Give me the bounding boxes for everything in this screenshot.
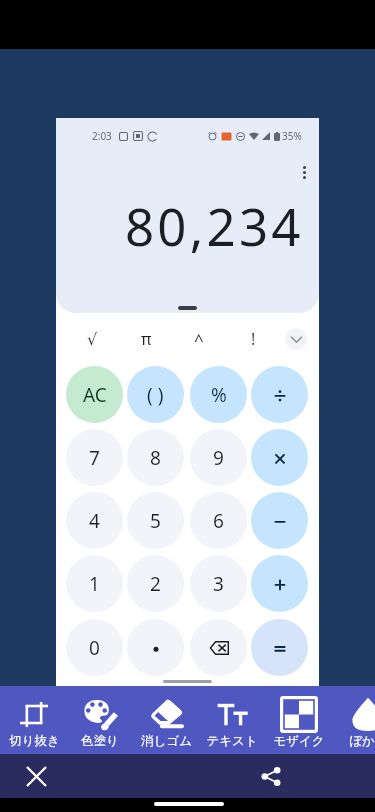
staticText: ^ xyxy=(194,328,204,351)
staticText: 3 xyxy=(213,571,224,597)
button[interactable]: % xyxy=(190,366,247,423)
button[interactable]: 消しゴム xyxy=(126,686,206,754)
staticText: % xyxy=(211,382,227,408)
button[interactable]: More options xyxy=(292,160,316,184)
button[interactable]: モザイク xyxy=(259,686,339,754)
button[interactable]: テキスト xyxy=(192,686,272,754)
staticText: 色塗り xyxy=(81,733,119,749)
button[interactable]: 8 xyxy=(127,429,184,486)
staticText: 80,234 xyxy=(125,191,304,260)
staticText: √ xyxy=(87,330,98,349)
button[interactable]: 0 xyxy=(66,619,123,676)
button[interactable]: 5 xyxy=(127,492,184,549)
button[interactable]: Delete xyxy=(190,619,247,676)
staticText: ぼかし xyxy=(349,733,375,749)
button[interactable]: 6 xyxy=(190,492,247,549)
staticText: 5 xyxy=(150,508,161,534)
button[interactable]: AC xyxy=(66,366,123,423)
staticText: 8 xyxy=(150,445,161,471)
button[interactable]: × xyxy=(251,429,308,486)
button[interactable]: ぼかし xyxy=(328,686,375,754)
button[interactable]: − xyxy=(251,492,308,549)
button[interactable]: 9 xyxy=(190,429,247,486)
button[interactable]: ! xyxy=(229,323,277,355)
staticText: 1 xyxy=(89,571,100,597)
button[interactable]: = xyxy=(251,619,308,676)
button[interactable]: π xyxy=(122,323,170,355)
other: · xyxy=(149,641,163,655)
staticText: π xyxy=(141,328,152,350)
staticText: モザイク xyxy=(273,733,325,749)
button[interactable]: · xyxy=(127,619,184,676)
other: + xyxy=(273,577,287,591)
staticText: 2:03 xyxy=(92,129,112,143)
button[interactable]: ^ xyxy=(175,323,223,355)
staticText: 9 xyxy=(213,445,224,471)
staticText: テキスト xyxy=(206,733,258,749)
staticText: 35% xyxy=(282,129,302,143)
button[interactable]: 3 xyxy=(190,555,247,612)
button[interactable]: 4 xyxy=(66,492,123,549)
staticText: 7 xyxy=(89,445,100,471)
staticText: 2 xyxy=(150,571,161,597)
staticText: 消しゴム xyxy=(141,733,192,749)
staticText: ! xyxy=(251,328,256,350)
button[interactable]: Expand keypad xyxy=(285,328,307,350)
staticText: 4 xyxy=(89,508,100,534)
button[interactable]: 7 xyxy=(66,429,123,486)
staticText: ( ) xyxy=(147,382,164,408)
button[interactable]: ÷ xyxy=(251,366,308,423)
button[interactable]: ( ) xyxy=(127,366,184,423)
button[interactable]: √ xyxy=(68,323,116,355)
staticText: AC xyxy=(83,382,107,408)
other: = xyxy=(273,641,287,655)
other: × xyxy=(273,451,287,465)
other: − xyxy=(273,514,287,528)
other: Delete xyxy=(209,641,229,655)
staticText: 切り抜き xyxy=(9,733,60,749)
button[interactable]: + xyxy=(251,555,308,612)
staticText: 6 xyxy=(213,508,224,534)
other: ÷ xyxy=(273,388,287,402)
button[interactable]: 切り抜き xyxy=(0,686,74,754)
button[interactable]: 色塗り xyxy=(60,686,140,754)
button[interactable]: Close xyxy=(18,758,54,794)
button[interactable]: 1 xyxy=(66,555,123,612)
button[interactable]: 2 xyxy=(127,555,184,612)
staticText: 0 xyxy=(89,635,100,661)
button[interactable]: Share xyxy=(252,758,288,794)
